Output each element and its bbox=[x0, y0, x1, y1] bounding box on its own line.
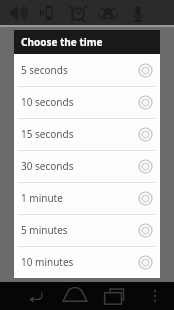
button[interactable]: 10 minutes bbox=[14, 246, 160, 278]
staticText: 10 seconds bbox=[21, 95, 138, 109]
staticText: 15 seconds bbox=[21, 127, 138, 141]
staticText: 1 minute bbox=[21, 191, 138, 205]
staticText: 5 seconds bbox=[21, 63, 138, 77]
staticText: 30 seconds bbox=[21, 159, 138, 173]
button[interactable]: Recent apps bbox=[102, 284, 128, 308]
button[interactable]: 5 minutes bbox=[14, 214, 160, 246]
staticText: 10 minutes bbox=[21, 255, 138, 269]
staticText: 5 minutes bbox=[21, 223, 138, 237]
button[interactable]: Home bbox=[62, 284, 88, 308]
button[interactable]: 15 seconds bbox=[14, 118, 160, 150]
button[interactable]: 30 seconds bbox=[14, 150, 160, 182]
button[interactable]: 10 seconds bbox=[14, 86, 160, 118]
button[interactable]: 5 seconds bbox=[14, 54, 160, 86]
staticText: Choose the time bbox=[21, 35, 103, 49]
button[interactable]: Choose the time bbox=[14, 30, 160, 54]
button[interactable]: Back bbox=[22, 284, 48, 308]
button[interactable]: More options bbox=[142, 284, 168, 308]
button[interactable]: 1 minute bbox=[14, 182, 160, 214]
